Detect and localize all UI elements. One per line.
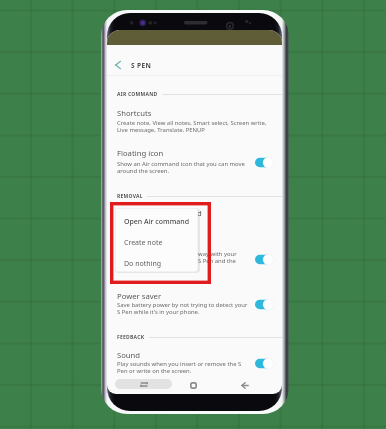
staticText: When S Pen is removed: [117, 208, 202, 218]
button[interactable]: Toggle setting: [255, 358, 274, 369]
button[interactable]: Toggle setting: [255, 254, 274, 265]
button[interactable]: Create note: [124, 238, 163, 248]
staticText: Air actions: [117, 240, 155, 250]
staticText: Choose what happens right away with your…: [117, 250, 237, 272]
staticText: Create note, View all notes, Smart selec…: [117, 119, 267, 134]
button[interactable]: Back: [241, 382, 249, 389]
button[interactable]: Toggle setting: [255, 157, 274, 168]
button[interactable]: [107, 44, 282, 75]
staticText: Open Air command: [117, 219, 171, 227]
staticText: Power saver: [117, 291, 162, 301]
staticText: REMOVAL: [117, 193, 143, 200]
button[interactable]: Do nothing: [124, 259, 162, 269]
button[interactable]: Open Air command: [124, 217, 190, 227]
staticText: FEEDBACK: [117, 334, 145, 341]
other: Navigate up: [115, 61, 121, 69]
staticText: Shortcuts: [117, 108, 152, 118]
button[interactable]: Home: [190, 382, 197, 389]
staticText: S PEN: [131, 61, 152, 70]
staticText: Show an Air command icon that you can mo…: [117, 160, 245, 175]
staticText: Play sounds when you insert or remove th…: [117, 360, 242, 375]
button[interactable]: Recent apps: [115, 379, 172, 389]
staticText: Sound: [117, 350, 141, 360]
staticText: AIR COMMAND: [117, 91, 158, 98]
staticText: Save battery power by not trying to dete…: [117, 301, 248, 316]
button[interactable]: Toggle setting: [255, 299, 274, 310]
staticText: Floating icon: [117, 148, 164, 158]
